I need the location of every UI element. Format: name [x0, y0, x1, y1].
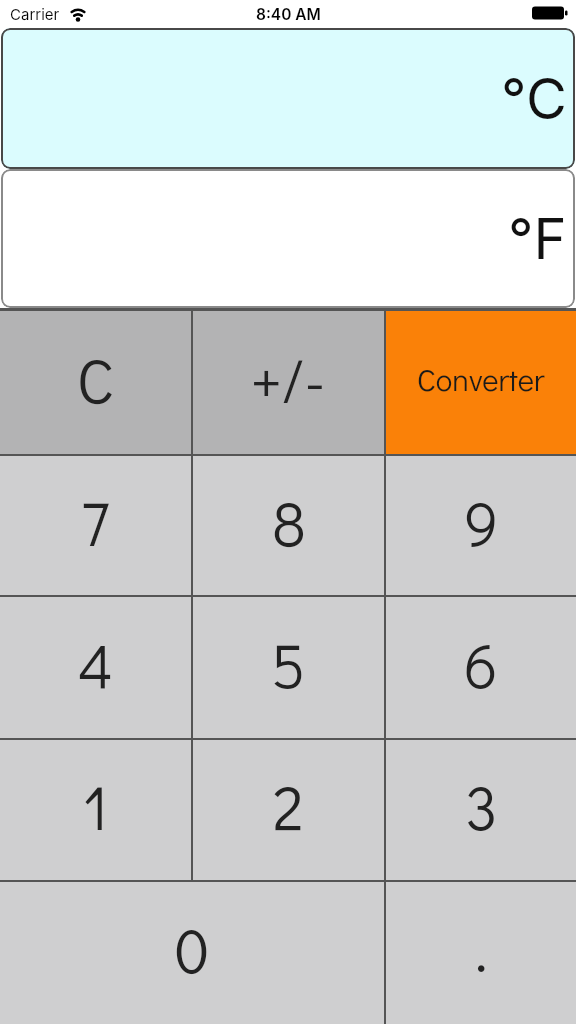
staticText: Converter: [417, 359, 545, 400]
button[interactable]: 3: [386, 740, 576, 880]
button[interactable]: C: [0, 311, 191, 454]
staticText: 8:40 AM: [256, 5, 321, 24]
staticText: °F: [508, 205, 567, 273]
button[interactable]: 8: [193, 456, 384, 595]
button[interactable]: .: [386, 882, 576, 1024]
button[interactable]: 6: [386, 597, 576, 738]
staticText: Carrier: [10, 5, 60, 23]
button[interactable]: Converter: [386, 311, 576, 454]
staticText: 5: [271, 624, 306, 704]
button[interactable]: 4: [0, 597, 191, 738]
staticText: +/-: [251, 339, 326, 419]
button[interactable]: 1: [0, 740, 191, 880]
staticText: 0: [175, 909, 210, 989]
staticText: 4: [78, 624, 114, 704]
button[interactable]: 2: [193, 740, 384, 880]
staticText: 2: [273, 766, 304, 846]
staticText: 1: [83, 766, 109, 846]
staticText: °C: [501, 65, 567, 133]
staticText: 9: [464, 482, 499, 562]
staticText: 6: [464, 624, 498, 704]
button[interactable]: 5: [193, 597, 384, 738]
staticText: 8: [272, 482, 306, 562]
staticText: .: [475, 908, 488, 988]
button[interactable]: 9: [386, 456, 576, 595]
staticText: 7: [81, 482, 110, 562]
button[interactable]: °F: [1, 169, 575, 308]
button[interactable]: 7: [0, 456, 191, 595]
button[interactable]: °C: [1, 28, 575, 169]
staticText: C: [77, 339, 114, 419]
staticText: 3: [465, 766, 498, 846]
button[interactable]: 0: [0, 882, 384, 1024]
button[interactable]: +/-: [193, 311, 384, 454]
